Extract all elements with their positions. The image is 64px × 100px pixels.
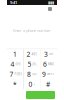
button[interactable]: 8 bbox=[24, 69, 40, 79]
button[interactable]: 0 bbox=[24, 79, 40, 89]
staticText: PQRS bbox=[15, 72, 22, 76]
staticText: ABC bbox=[31, 52, 37, 56]
staticText: Enter a phone number bbox=[13, 28, 51, 33]
button[interactable]: 3 bbox=[40, 49, 56, 59]
staticText: 9:41 bbox=[10, 0, 17, 5]
staticText: 8 bbox=[27, 70, 31, 79]
button[interactable]: 5 bbox=[24, 59, 40, 69]
button[interactable]: # bbox=[40, 79, 56, 89]
staticText: 0 bbox=[28, 80, 32, 89]
button[interactable]: Call bbox=[26, 91, 55, 99]
staticText: # bbox=[46, 80, 50, 89]
staticText: 9 bbox=[42, 70, 46, 79]
button[interactable]: 1 bbox=[8, 49, 24, 59]
staticText: GHI bbox=[16, 62, 21, 66]
staticText: WXYZ bbox=[47, 72, 55, 76]
staticText: 5 bbox=[27, 60, 31, 69]
staticText: 4 bbox=[11, 60, 15, 69]
button[interactable]: * bbox=[8, 79, 24, 89]
staticText: TUV bbox=[32, 72, 37, 76]
button[interactable]: Contacts bbox=[45, 5, 55, 13]
button[interactable]: 6 bbox=[40, 59, 56, 69]
staticText: * bbox=[13, 80, 17, 89]
staticText: JKL bbox=[32, 62, 36, 66]
button[interactable]: 2 bbox=[24, 49, 40, 59]
button[interactable]: 7 bbox=[8, 69, 24, 79]
staticText: + bbox=[33, 82, 35, 86]
staticText: 1 bbox=[13, 50, 17, 59]
button[interactable]: 4 bbox=[8, 59, 24, 69]
staticText: DEF bbox=[49, 52, 53, 56]
button[interactable]: 9 bbox=[40, 69, 56, 79]
staticText: ▮▮▮ bbox=[48, 0, 54, 5]
staticText: 7 bbox=[10, 70, 14, 79]
staticText: 3 bbox=[44, 50, 48, 59]
staticText: MNO bbox=[48, 62, 54, 66]
staticText: 2 bbox=[26, 50, 30, 59]
staticText: 6 bbox=[43, 60, 47, 69]
